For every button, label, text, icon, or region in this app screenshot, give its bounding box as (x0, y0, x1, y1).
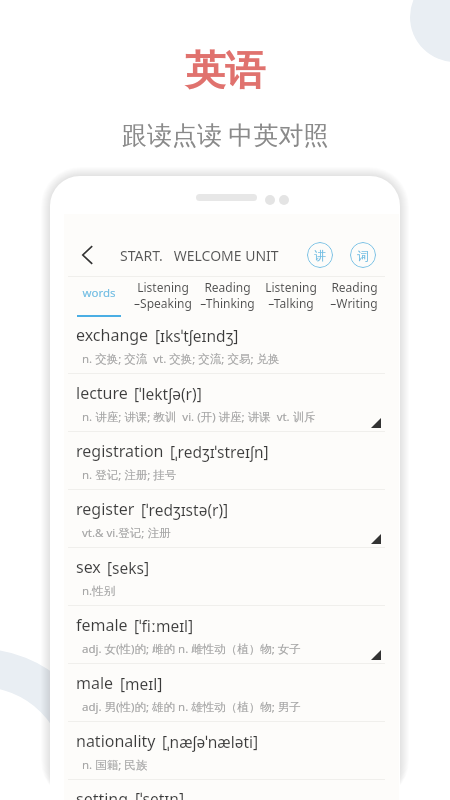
staticText: [ˈlektʃə(r)] (134, 383, 202, 404)
staticText: [ˌnæʃəˈnæləti] (162, 731, 259, 752)
button[interactable]: Listening (259, 277, 323, 316)
staticText: n. 交换; 交流 vt. 交换; 交流; 交易; 兑换 (82, 351, 280, 367)
staticText: [ˈsetɪŋ] (135, 788, 184, 800)
staticText: nationality (76, 730, 156, 752)
button[interactable]: lecture (68, 374, 399, 432)
staticText: n.性别 (82, 583, 116, 599)
staticText: Reading (204, 279, 251, 295)
staticText: –Writing (330, 295, 378, 311)
staticText: 跟读点读 中英对照 (122, 117, 329, 151)
button[interactable]: 讲 (307, 242, 333, 268)
staticText: vt.& vi.登记; 注册 (82, 525, 171, 541)
staticText: male (76, 672, 114, 694)
staticText: n. 讲座; 讲课; 教训 vi. (开) 讲座; 讲课 vt. 训斥 (82, 409, 316, 425)
staticText: setting (76, 788, 129, 800)
button[interactable]: registration (68, 432, 399, 490)
button[interactable]: setting (68, 780, 399, 800)
staticText: [ˈredʒɪstə(r)] (141, 499, 229, 520)
staticText: Listening (137, 279, 189, 295)
staticText: lecture (76, 382, 128, 404)
staticText: registration (76, 440, 164, 462)
button[interactable]: male (68, 664, 399, 722)
staticText: [ˈfiːmeɪl] (134, 615, 194, 636)
staticText: adj. 男(性)的; 雄的 n. 雄性动（植）物; 男子 (82, 699, 301, 715)
staticText: register (76, 498, 135, 520)
staticText: [ɪksˈtʃeɪndʒ] (155, 325, 239, 346)
staticText: –Thinking (200, 295, 255, 311)
staticText: START. WELCOME UNIT (120, 246, 279, 265)
staticText: [seks] (107, 557, 150, 578)
staticText: [ˌredʒɪˈstreɪʃn] (170, 441, 269, 462)
button[interactable]: Reading (323, 277, 385, 316)
staticText: adj. 女(性)的; 雌的 n. 雌性动（植）物; 女子 (82, 641, 301, 657)
button[interactable]: 词 (350, 242, 376, 268)
staticText: female (76, 614, 128, 636)
staticText: 词 (357, 248, 369, 263)
button[interactable]: exchange (68, 316, 399, 374)
button[interactable]: words (68, 277, 130, 316)
staticText: Reading (331, 279, 378, 295)
button[interactable]: nationality (68, 722, 399, 780)
button[interactable]: Listening (130, 277, 196, 316)
button[interactable]: Back (68, 237, 104, 273)
button[interactable]: sex (68, 548, 399, 606)
button[interactable]: female (68, 606, 399, 664)
staticText: 讲 (314, 248, 326, 263)
staticText: 英语 (185, 45, 265, 95)
staticText: words (82, 285, 116, 301)
staticText: sex (76, 556, 101, 578)
staticText: exchange (76, 324, 149, 346)
staticText: [meɪl] (120, 673, 163, 694)
button[interactable]: register (68, 490, 399, 548)
staticText: Listening (265, 279, 317, 295)
staticText: –Talking (268, 295, 314, 311)
staticText: n. 登记; 注册; 挂号 (82, 467, 177, 483)
staticText: n. 国籍; 民族 (82, 757, 148, 773)
staticText: –Speaking (134, 295, 192, 311)
button[interactable]: Reading (196, 277, 259, 316)
